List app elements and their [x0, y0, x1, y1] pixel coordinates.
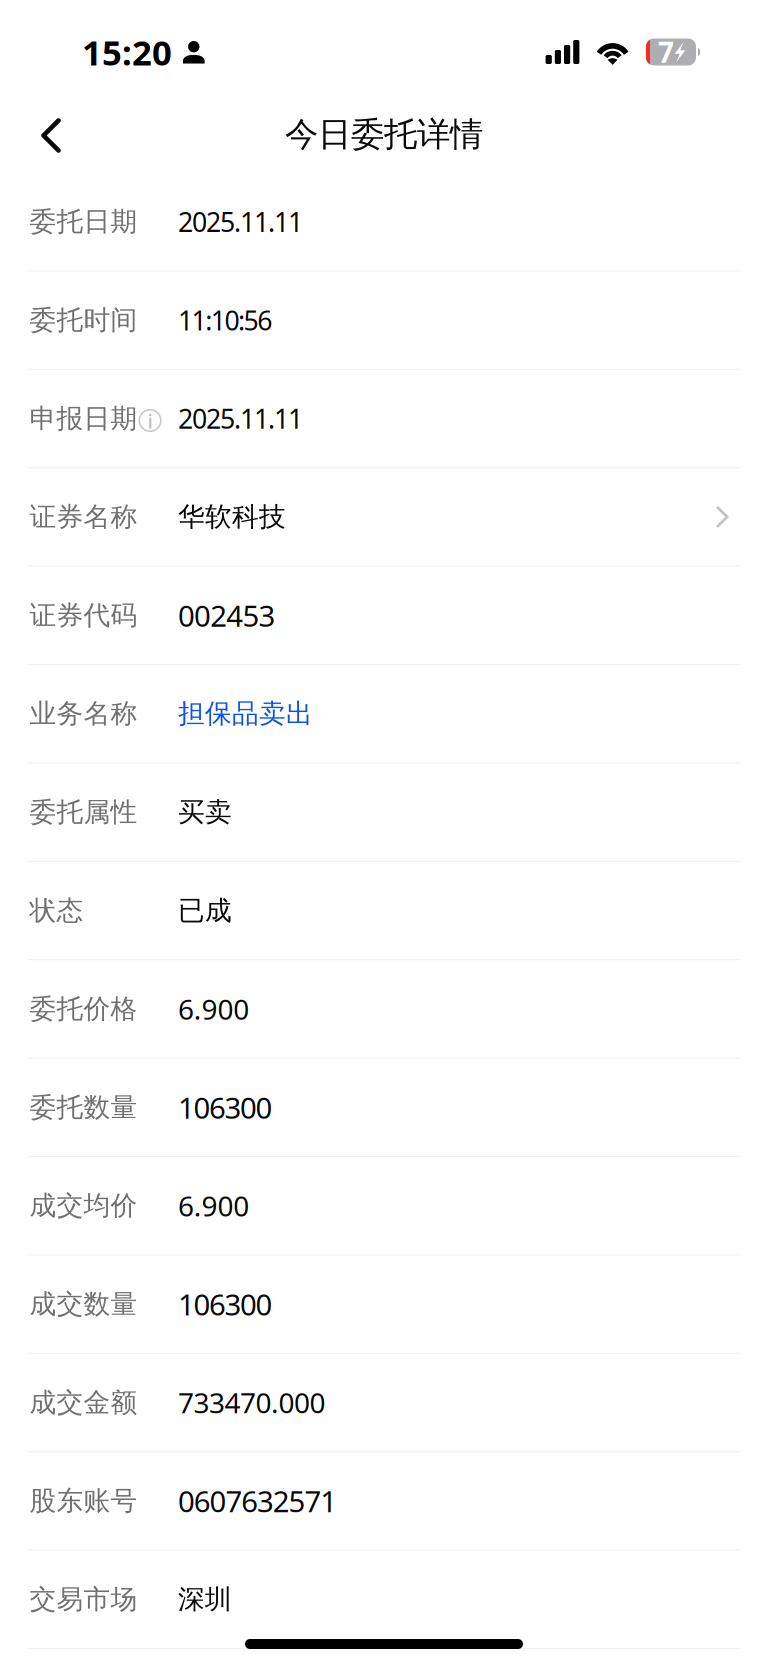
staticText: 今日委托详情	[285, 114, 483, 155]
staticText: 733470.000	[178, 1384, 325, 1421]
button[interactable]: Back	[20, 101, 82, 163]
staticText: 2025.11.11	[178, 401, 303, 436]
button[interactable]: 证券名称	[0, 468, 768, 567]
button[interactable]: 关于申报日期	[139, 407, 162, 430]
staticText: 状态	[30, 894, 84, 927]
staticText: 证券名称	[30, 500, 138, 533]
staticText: 深圳	[178, 1583, 232, 1616]
staticText: 买卖	[178, 796, 232, 828]
staticText: 106300	[178, 1088, 272, 1127]
staticText: 股东账号	[30, 1484, 138, 1517]
staticText: 委托属性	[30, 796, 138, 828]
staticText: i	[148, 408, 153, 434]
staticText: 15:20	[82, 29, 172, 75]
staticText: 0607632571	[178, 1481, 337, 1520]
staticText: 委托价格	[30, 992, 138, 1025]
staticText: 2025.11.11	[178, 204, 303, 239]
staticText: 6.900	[178, 1187, 249, 1224]
staticText: 7	[658, 33, 674, 71]
staticText: 成交数量	[30, 1288, 138, 1320]
staticText: 委托日期	[30, 205, 138, 238]
staticText: 成交均价	[30, 1189, 138, 1222]
staticText: 6.900	[178, 990, 249, 1027]
staticText: 交易市场	[30, 1583, 138, 1616]
staticText: 11:10:56	[178, 302, 272, 338]
staticText: 成交金额	[30, 1386, 138, 1419]
staticText: 委托时间	[30, 304, 138, 336]
staticText: 担保品卖出	[178, 697, 313, 730]
staticText: 业务名称	[30, 697, 138, 730]
staticText: 已成	[178, 894, 232, 927]
staticText: 证券代码	[30, 599, 138, 632]
staticText: 002453	[178, 596, 275, 635]
button[interactable]: 担保品卖出	[178, 697, 313, 730]
staticText: 106300	[178, 1285, 272, 1324]
staticText: 申报日期	[30, 402, 138, 435]
staticText: 委托数量	[30, 1091, 138, 1124]
staticText: 华软科技	[178, 500, 286, 533]
